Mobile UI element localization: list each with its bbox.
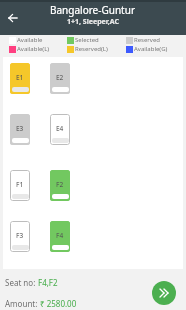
staticText: ₹ 2580.00 bbox=[40, 298, 77, 309]
staticText: Amount: bbox=[5, 298, 40, 309]
staticText: E1 bbox=[16, 73, 24, 82]
button[interactable]: F1 bbox=[10, 170, 30, 201]
staticText: Bangalore-Guntur bbox=[50, 3, 136, 17]
button[interactable]: E4 bbox=[50, 114, 70, 145]
staticText: F4 bbox=[56, 231, 64, 240]
staticText: Seat no: bbox=[5, 277, 38, 288]
button[interactable]: E2 bbox=[50, 63, 70, 94]
staticText: F2 bbox=[56, 180, 64, 189]
staticText: E3 bbox=[16, 124, 24, 133]
staticText: F3 bbox=[16, 231, 24, 240]
staticText: Available bbox=[17, 36, 43, 44]
staticText: E4 bbox=[56, 124, 64, 133]
staticText: E2 bbox=[56, 73, 64, 82]
staticText: Available(L) bbox=[17, 45, 50, 53]
staticText: Reserved(L) bbox=[75, 45, 108, 53]
staticText: Available(G) bbox=[134, 45, 168, 53]
button[interactable]: F3 bbox=[10, 221, 30, 252]
button[interactable]: Proceed bbox=[152, 281, 176, 305]
button[interactable]: F2 bbox=[50, 170, 70, 201]
staticText: 1+1, Sleeper,AC bbox=[67, 17, 119, 27]
button[interactable]: F4 bbox=[50, 221, 70, 252]
staticText: Reserved bbox=[134, 36, 160, 44]
staticText: F4,F2 bbox=[38, 277, 58, 288]
staticText: F1 bbox=[16, 180, 24, 189]
button[interactable]: E1 bbox=[10, 63, 30, 94]
button[interactable]: E3 bbox=[10, 114, 30, 145]
button[interactable]: Back bbox=[1, 6, 25, 30]
staticText: Selected bbox=[75, 36, 99, 44]
